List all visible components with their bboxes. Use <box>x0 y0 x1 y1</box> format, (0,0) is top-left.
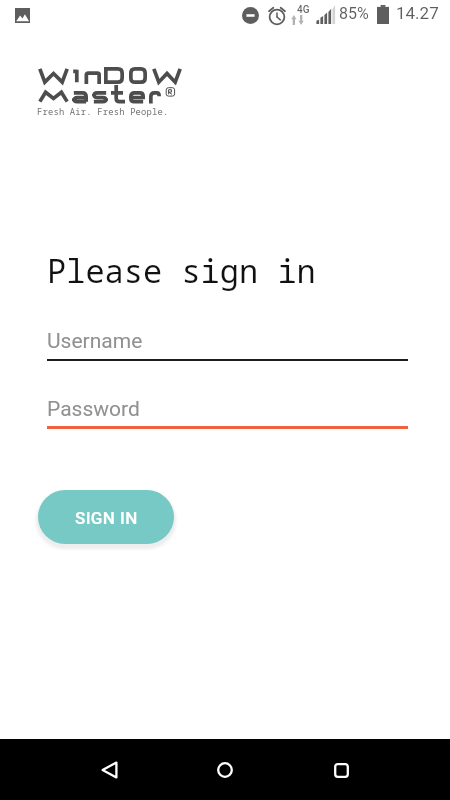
button[interactable]: Username <box>47 324 408 361</box>
staticText: 4G <box>297 4 310 16</box>
staticText: 85% <box>339 4 369 23</box>
button[interactable]: Home <box>201 746 249 794</box>
staticText: Username <box>47 329 143 354</box>
staticText: 14.27 <box>396 3 439 23</box>
staticText: Password <box>47 397 140 422</box>
button[interactable]: Back <box>85 746 133 794</box>
staticText: Please sign in <box>47 249 316 293</box>
button[interactable]: Recent apps <box>317 746 365 794</box>
button[interactable]: Password <box>47 392 408 429</box>
staticText: SIGN IN <box>75 508 138 528</box>
button[interactable]: SIGN IN <box>38 490 174 544</box>
staticText: Fresh Air. Fresh People. <box>37 106 169 118</box>
